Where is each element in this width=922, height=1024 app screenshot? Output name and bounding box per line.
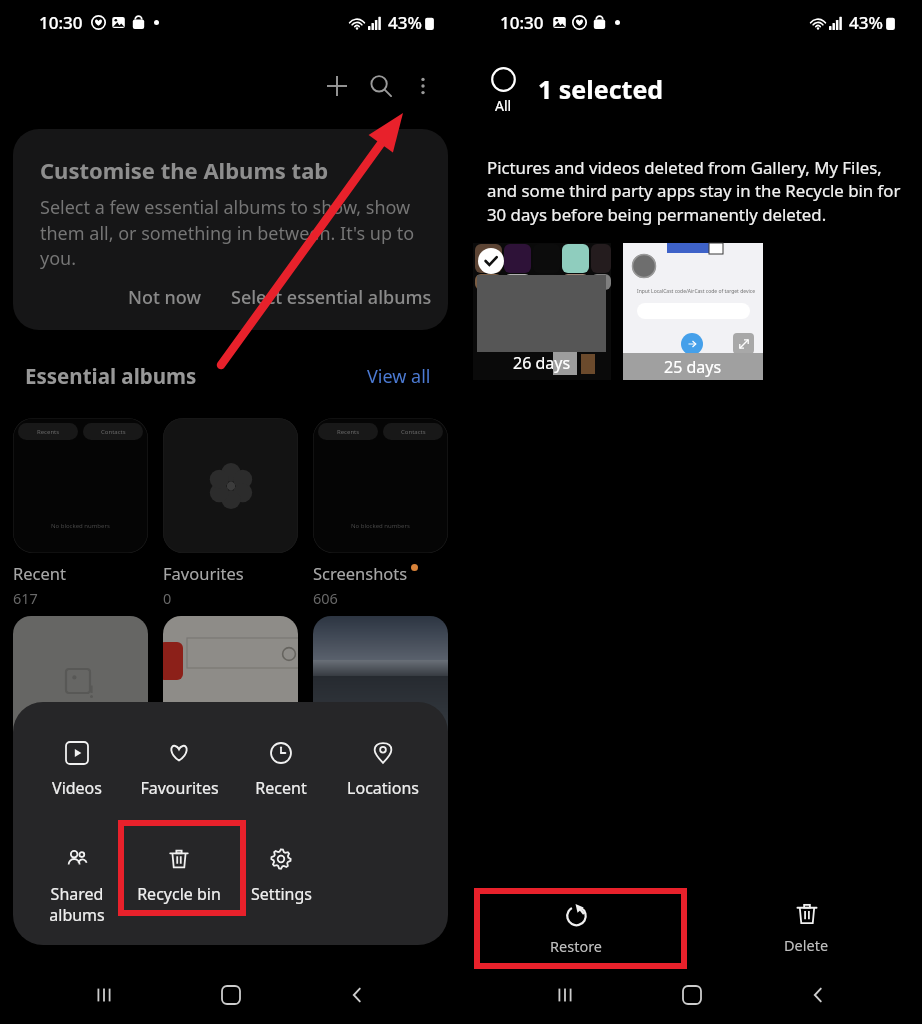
button[interactable]: Recent xyxy=(230,738,332,803)
staticText: 10:30 xyxy=(39,11,83,34)
staticText: Videos xyxy=(52,777,102,799)
button[interactable]: Album photo 1 xyxy=(13,616,148,751)
button[interactable]: Delete xyxy=(691,894,922,955)
button[interactable]: Back xyxy=(795,972,841,1018)
staticText: Favourites xyxy=(163,562,244,584)
staticText: Contacts xyxy=(401,428,426,436)
staticText: 10:30 xyxy=(500,11,544,34)
staticText: Select a few essential albums to show, s… xyxy=(40,195,426,270)
staticText: Favourites xyxy=(140,777,219,799)
button[interactable]: Settings xyxy=(230,844,332,909)
button[interactable]: Back xyxy=(334,972,380,1018)
button[interactable]: More options xyxy=(403,66,443,106)
button[interactable]: Shared albums xyxy=(26,844,128,930)
staticText: 606 xyxy=(313,588,338,608)
staticText: No blocked numbers xyxy=(351,522,410,530)
button[interactable]: Not now xyxy=(114,277,215,318)
button[interactable]: Recycle bin xyxy=(128,844,230,909)
staticText: No blocked numbers xyxy=(51,522,110,530)
button[interactable]: Deleted item, 25 days left xyxy=(623,243,763,380)
staticText: 0 xyxy=(163,588,172,608)
button[interactable]: Videos xyxy=(26,738,128,803)
button[interactable]: Restore xyxy=(461,894,691,956)
staticText: All xyxy=(495,96,512,115)
staticText: Customise the Albums tab xyxy=(40,155,329,185)
staticText: 25 days xyxy=(664,356,722,378)
button[interactable] xyxy=(163,418,298,553)
staticText: Settings xyxy=(251,883,312,905)
button[interactable]: Recents xyxy=(542,972,588,1018)
button[interactable]: Recents xyxy=(81,972,127,1018)
staticText: 43% xyxy=(849,11,883,34)
staticText: 26 days xyxy=(513,352,571,374)
button[interactable]: Deleted item, 26 days left xyxy=(473,243,611,380)
button[interactable]: Favourites xyxy=(128,738,230,803)
staticText: 617 xyxy=(13,588,38,608)
button[interactable]: Recents xyxy=(13,418,148,553)
staticText: Delete xyxy=(784,935,829,955)
staticText: Input LocalCast code/AirCast code of tar… xyxy=(637,288,755,295)
staticText: Select essential albums xyxy=(231,285,432,310)
button[interactable]: Select essential albums xyxy=(225,277,438,318)
staticText: Shared albums xyxy=(49,883,105,926)
button[interactable]: Search xyxy=(359,64,403,108)
button[interactable]: Locations xyxy=(332,738,434,803)
button[interactable]: Home xyxy=(208,972,254,1018)
button[interactable]: Add xyxy=(315,64,359,108)
staticText: Recent xyxy=(13,562,66,584)
staticText: 1 selected xyxy=(538,72,664,106)
button[interactable]: Album photo 2 xyxy=(163,616,298,751)
staticText: Recents xyxy=(337,428,360,436)
staticText: Pictures and videos deleted from Gallery… xyxy=(487,156,908,226)
staticText: Recycle bin xyxy=(137,883,221,905)
staticText: Recent xyxy=(255,777,307,799)
button[interactable]: Customise the Albums tab xyxy=(13,129,448,330)
staticText: Screenshots xyxy=(313,562,408,584)
button[interactable]: Select all xyxy=(485,67,522,115)
staticText: Locations xyxy=(347,777,419,799)
staticText: Restore xyxy=(550,936,603,956)
staticText: Essential albums xyxy=(25,362,197,390)
staticText: View all xyxy=(367,364,431,389)
staticText: 43% xyxy=(388,11,422,34)
button[interactable]: Recents xyxy=(313,418,448,553)
button[interactable]: Album photo 3 xyxy=(313,616,448,751)
staticText: Contacts xyxy=(101,428,126,436)
button[interactable]: Home xyxy=(669,972,715,1018)
button[interactable]: View all xyxy=(367,364,431,389)
staticText: Not now xyxy=(128,285,201,310)
staticText: Recents xyxy=(37,428,60,436)
